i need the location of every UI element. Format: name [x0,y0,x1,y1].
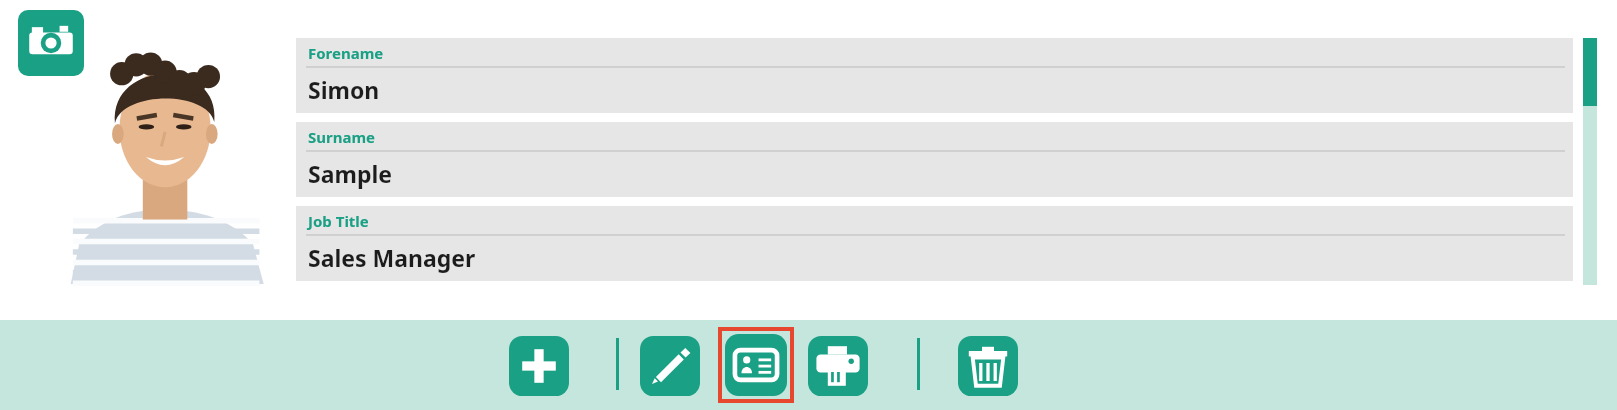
staticText: Job Title [308,211,369,231]
button[interactable]: Contact details [725,334,787,396]
button[interactable]: Add [509,336,569,396]
button[interactable]: Delete [958,336,1018,396]
button[interactable]: Surname [296,122,1573,197]
button[interactable]: Contact photo [58,36,270,284]
button[interactable]: Edit [640,336,700,396]
staticText: Sales Manager [308,242,476,273]
button[interactable]: Scroll [1583,38,1597,285]
button[interactable]: Job Title [296,206,1573,281]
button[interactable]: Take photo [18,10,84,76]
staticText: Sample [308,158,392,189]
button[interactable]: Forename [296,38,1573,113]
button[interactable]: Print [808,336,868,396]
staticText: Surname [308,127,376,147]
staticText: Forename [308,43,384,63]
staticText: Simon [308,74,380,105]
